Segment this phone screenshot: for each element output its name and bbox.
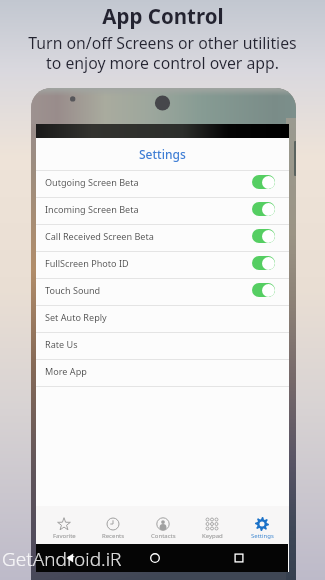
button[interactable]: FullScreen Photo ID [36, 252, 289, 279]
staticText: FullScreen Photo ID [45, 257, 252, 269]
button[interactable]: Toggle [252, 175, 275, 189]
button[interactable]: Home [147, 550, 163, 566]
button[interactable]: Keypad [190, 517, 234, 540]
button[interactable]: Toggle [252, 283, 275, 297]
staticText: Settings [139, 146, 186, 162]
button[interactable]: Rate Us [36, 333, 289, 360]
button[interactable]: Toggle [252, 229, 275, 243]
button[interactable]: Outgoing Screen Beta [36, 171, 289, 198]
button[interactable]: Settings [240, 517, 284, 540]
button[interactable]: Toggle [252, 202, 275, 216]
staticText: Touch Sound [45, 284, 252, 296]
staticText: Turn on/off Screens or other utilities t… [28, 32, 297, 73]
staticText: Recents [102, 532, 125, 540]
staticText: Outgoing Screen Beta [45, 176, 252, 188]
staticText: Settings [251, 532, 274, 540]
staticText: Favorite [53, 532, 76, 540]
button[interactable]: Incoming Screen Beta [36, 198, 289, 225]
button[interactable]: Call Received Screen Beta [36, 225, 289, 252]
staticText: Incoming Screen Beta [45, 203, 252, 215]
button[interactable]: More App [36, 360, 289, 387]
button[interactable]: Contacts [141, 517, 185, 540]
button[interactable]: Favorite [42, 517, 86, 540]
button[interactable]: Back [62, 550, 78, 566]
staticText: Call Received Screen Beta [45, 230, 252, 242]
button[interactable]: Recents [91, 517, 135, 540]
staticText: Contacts [151, 532, 176, 540]
staticText: Keypad [202, 532, 223, 540]
staticText: Rate Us [45, 338, 78, 350]
button[interactable]: Toggle [252, 256, 275, 270]
staticText: App Control [102, 2, 224, 30]
staticText: Set Auto Reply [45, 311, 107, 323]
staticText: GetAndroid.iR [2, 546, 122, 572]
button[interactable]: Touch Sound [36, 279, 289, 306]
staticText: More App [45, 365, 87, 377]
button[interactable]: Set Auto Reply [36, 306, 289, 333]
button[interactable]: Recents [231, 550, 247, 566]
